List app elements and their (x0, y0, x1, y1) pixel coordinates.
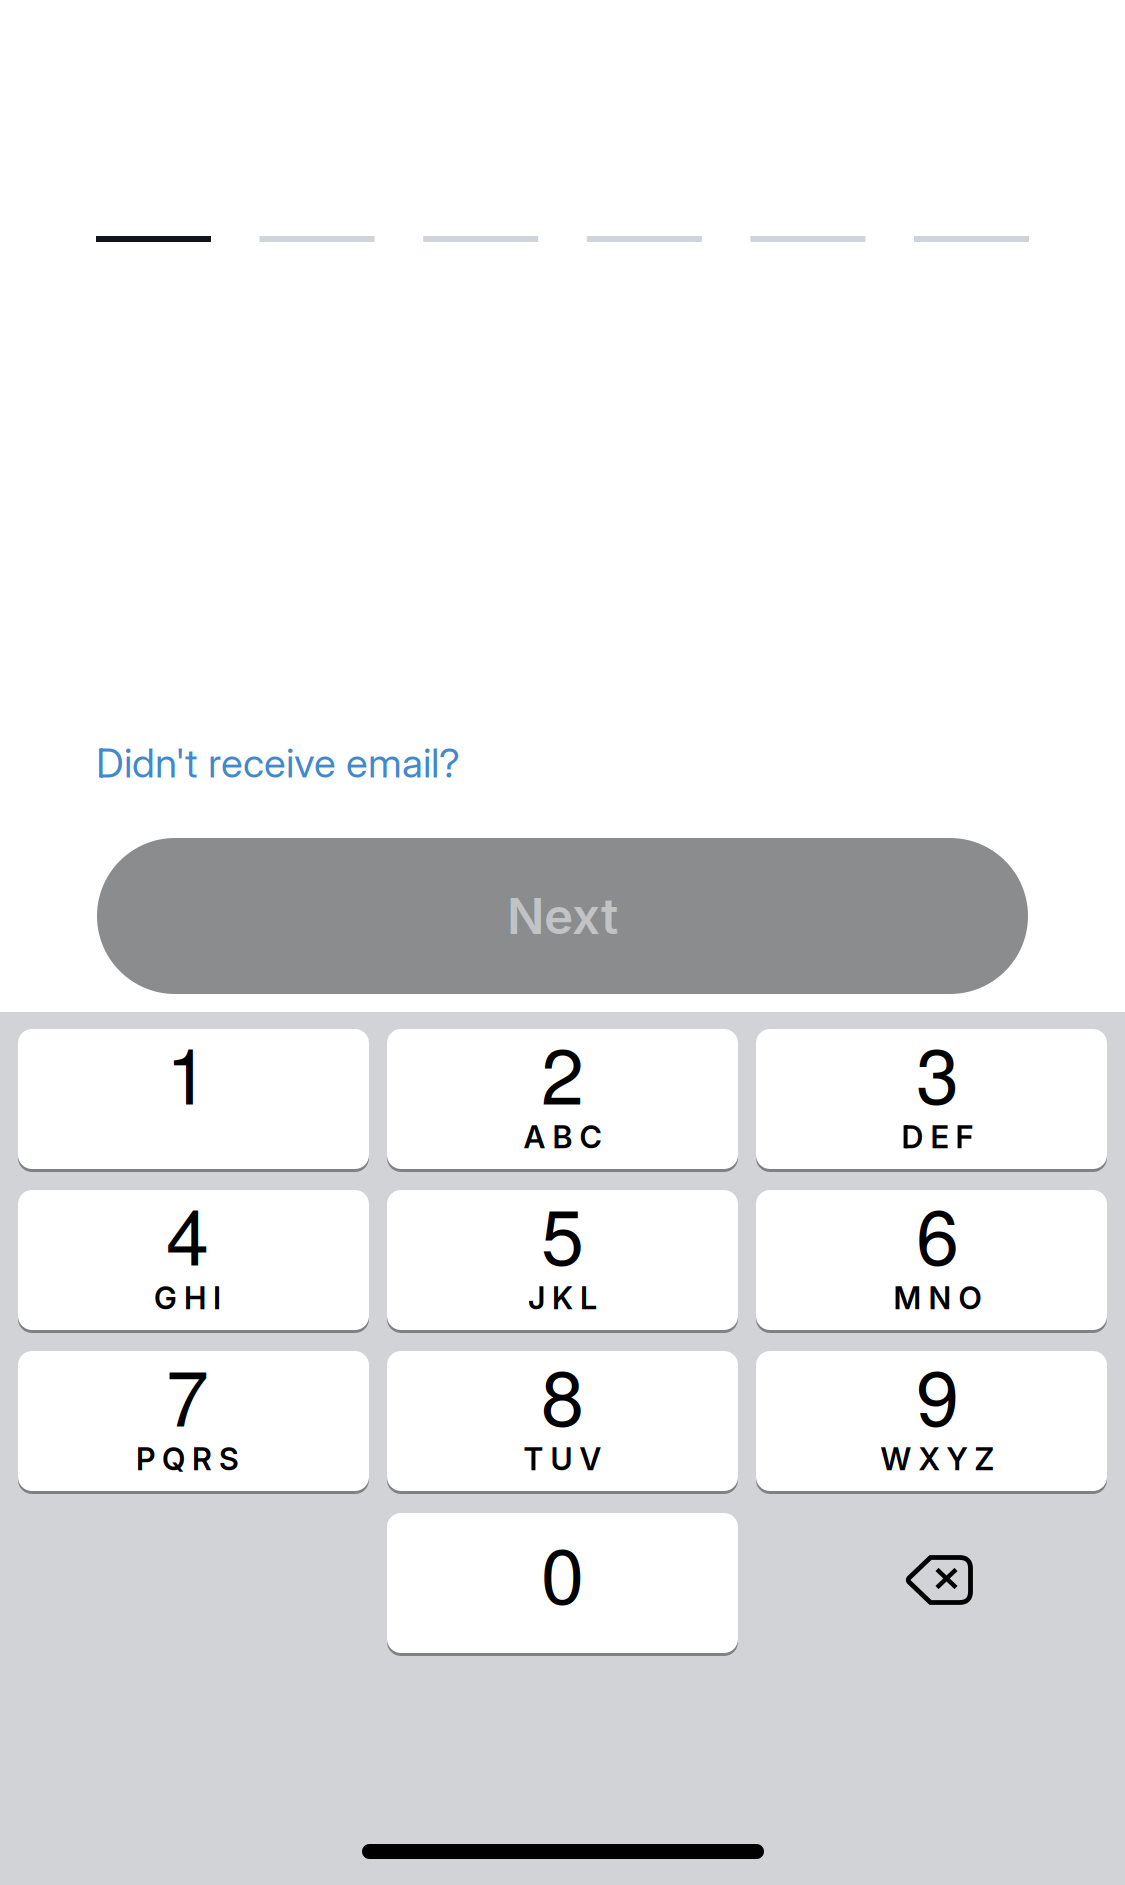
button[interactable]: 6 (756, 1190, 1107, 1330)
button[interactable]: 5 (387, 1190, 738, 1330)
button[interactable]: Didn't receive email? (96, 734, 1029, 792)
staticText: W X Y Z (880, 1440, 994, 1477)
button[interactable]: Delete (756, 1513, 1107, 1653)
button[interactable]: 4 (18, 1190, 369, 1330)
staticText: 0 (541, 1516, 584, 1626)
staticText: Next (507, 886, 618, 946)
button[interactable]: 9 (756, 1351, 1107, 1491)
staticText: 5 (541, 1177, 584, 1287)
staticText: A B C (523, 1118, 601, 1155)
staticText: J K L (528, 1279, 597, 1316)
button[interactable]: 7 (18, 1351, 369, 1491)
staticText: 3 (916, 1016, 959, 1126)
button[interactable]: 3 (756, 1029, 1107, 1169)
button[interactable]: 2 (387, 1029, 738, 1169)
button[interactable]: 0 (387, 1513, 738, 1653)
staticText: 1 (166, 1016, 209, 1126)
staticText: 6 (916, 1177, 959, 1287)
staticText: Didn't receive email? (96, 739, 460, 787)
staticText: 4 (166, 1177, 209, 1287)
staticText: G H I (154, 1279, 221, 1316)
staticText: 8 (541, 1338, 584, 1448)
staticText: T U V (523, 1440, 601, 1477)
button[interactable]: 1 (18, 1029, 369, 1169)
staticText: D E F (901, 1118, 973, 1155)
staticText: M N O (893, 1279, 981, 1316)
staticText: P Q R S (136, 1440, 239, 1477)
staticText: 7 (166, 1338, 209, 1448)
button[interactable]: Next (97, 838, 1028, 994)
staticText: 9 (916, 1338, 959, 1448)
button[interactable]: 8 (387, 1351, 738, 1491)
staticText: 2 (541, 1016, 584, 1126)
